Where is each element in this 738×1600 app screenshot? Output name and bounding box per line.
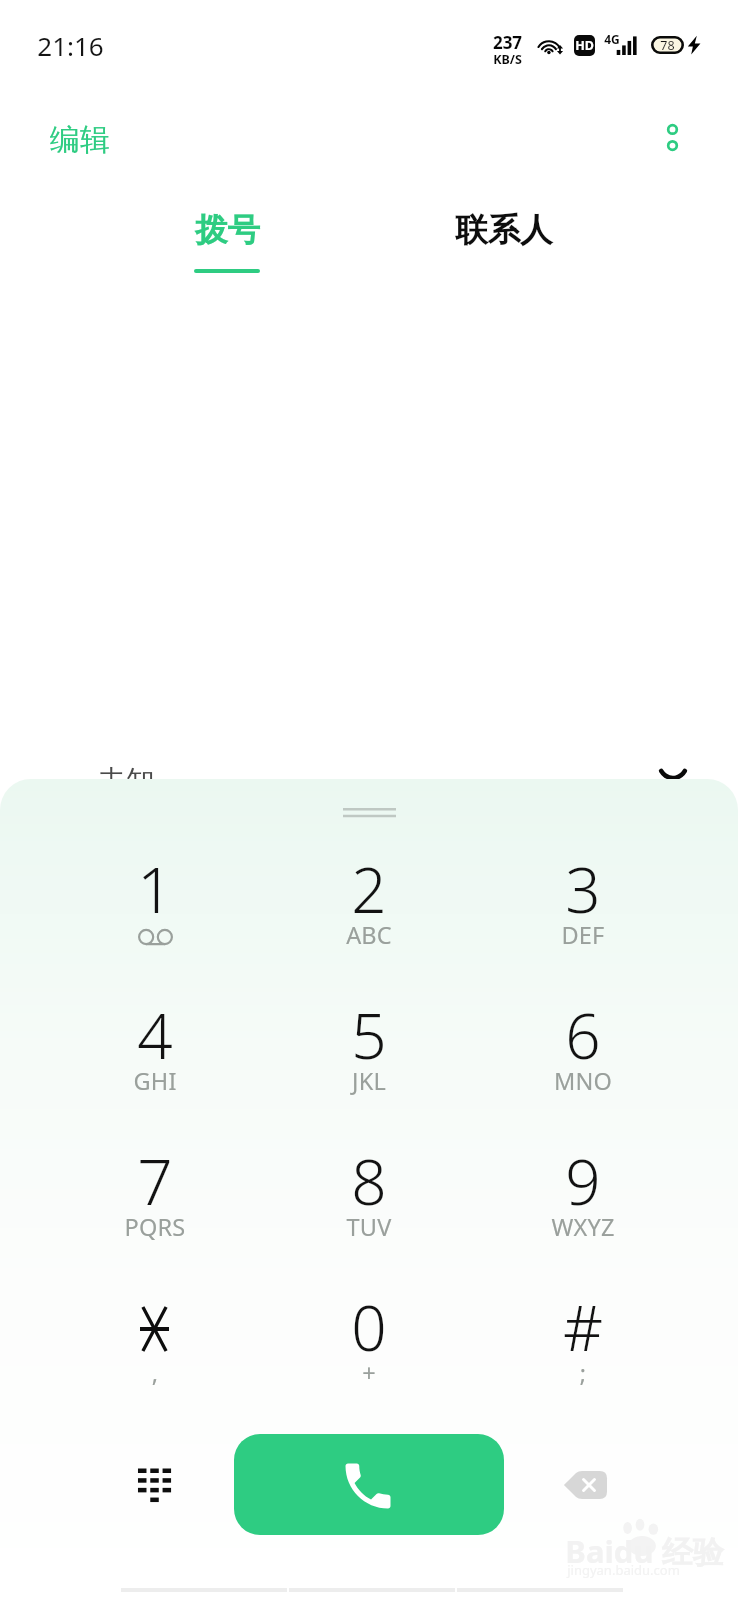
staticText: + [262, 1357, 476, 1389]
button[interactable]: 4 [48, 983, 262, 1109]
button[interactable]: 6 [476, 983, 690, 1109]
button[interactable]: , [48, 1275, 262, 1401]
button[interactable]: 8 [262, 1129, 476, 1255]
staticText: JKL [262, 1065, 476, 1097]
staticText: 1 [48, 847, 262, 931]
staticText: MNO [476, 1065, 690, 1097]
button[interactable]: 拨号 [159, 200, 295, 288]
staticText: 拨号 [195, 210, 260, 251]
staticText: , [48, 1357, 262, 1389]
button[interactable]: 1 [48, 837, 262, 963]
staticText: GHI [48, 1065, 262, 1097]
button[interactable]: # [476, 1275, 690, 1401]
button[interactable]: Keypad [124, 1454, 182, 1512]
staticText: Baidu 经验 [565, 1530, 724, 1572]
staticText: 8 [262, 1139, 476, 1223]
button[interactable]: 7 [48, 1129, 262, 1255]
staticText: 5 [262, 993, 476, 1077]
staticText: 联系人 [436, 210, 572, 251]
staticText: # [476, 1285, 690, 1369]
staticText: 237 [492, 31, 523, 54]
button[interactable]: 联系人 [436, 200, 572, 266]
staticText: 78 [660, 37, 675, 54]
staticText: 3 [476, 847, 690, 931]
button[interactable]: 编辑 [36, 111, 124, 169]
button[interactable]: More options [646, 111, 699, 164]
staticText: 编辑 [50, 121, 110, 159]
button[interactable]: 9 [476, 1129, 690, 1255]
staticText: 2 [262, 847, 476, 931]
staticText: 0 [262, 1285, 476, 1369]
staticText: 4 [48, 993, 262, 1077]
staticText: ABC [262, 919, 476, 951]
button[interactable]: 0 [262, 1275, 476, 1401]
button[interactable]: 5 [262, 983, 476, 1109]
staticText: PQRS [48, 1211, 262, 1243]
button[interactable]: 3 [476, 837, 690, 963]
staticText: ; [476, 1357, 690, 1389]
staticText: jingyan.baidu.com [567, 1561, 680, 1579]
staticText: TUV [262, 1211, 476, 1243]
staticText: 6 [476, 993, 690, 1077]
staticText: 4G [604, 31, 620, 47]
button[interactable]: 2 [262, 837, 476, 963]
staticText: DEF [476, 919, 690, 951]
button[interactable]: Call [234, 1434, 504, 1535]
staticText: 未知 [97, 763, 155, 800]
staticText: HD [575, 37, 594, 54]
button[interactable]: Delete [562, 1471, 607, 1499]
staticText: 9 [476, 1139, 690, 1223]
staticText: 7 [48, 1139, 262, 1223]
staticText: 21:16 [37, 28, 104, 63]
staticText: KB/S [492, 51, 523, 68]
staticText: WXYZ [476, 1211, 690, 1243]
